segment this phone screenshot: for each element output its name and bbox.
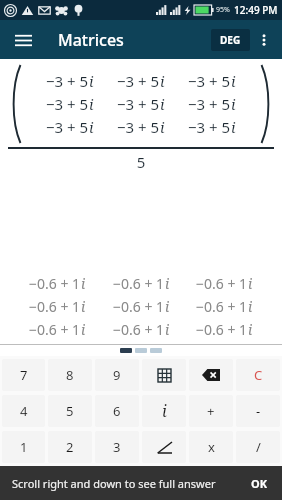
staticText: 12:49 PM [234, 3, 278, 17]
staticText: −3 + 5 [117, 71, 160, 91]
staticText: −3 + 5 [117, 117, 160, 137]
button[interactable]: + [189, 395, 233, 427]
staticText: i [162, 400, 167, 422]
button[interactable]: 4 [2, 395, 45, 427]
staticText: DEG [220, 33, 241, 47]
staticText: - [256, 402, 261, 420]
button[interactable]: Backspace [189, 359, 233, 391]
staticText: OK [251, 476, 268, 491]
button[interactable]: 1 [2, 431, 45, 463]
staticText: −0.6 + 1 [196, 297, 248, 316]
staticText: i [81, 320, 86, 339]
staticText: 6 [113, 402, 121, 420]
staticText: 4 [20, 402, 28, 420]
staticText: −3 + 5 [188, 117, 231, 137]
staticText: i [89, 94, 94, 114]
staticText: i [81, 274, 86, 293]
button[interactable]: OK [237, 468, 282, 499]
button[interactable]: 7 [2, 359, 45, 391]
button[interactable]: Imaginary unit [142, 395, 186, 427]
staticText: −0.6 + 1 [113, 274, 165, 293]
staticText: 9 [113, 366, 121, 384]
staticText: + [207, 402, 215, 420]
staticText: i [248, 297, 253, 316]
staticText: i [160, 117, 165, 137]
button[interactable]: 2 [48, 431, 92, 463]
staticText: −0.6 + 1 [29, 297, 81, 316]
button[interactable]: Angle [142, 431, 186, 463]
button[interactable]: 5 [48, 395, 92, 427]
button[interactable]: - [236, 395, 280, 427]
staticText: i [165, 274, 170, 293]
button[interactable]: 8 [48, 359, 92, 391]
staticText: x [208, 438, 215, 456]
button[interactable]: C [236, 359, 280, 391]
staticText: −3 + 5 [46, 71, 89, 91]
staticText: i [89, 71, 94, 91]
staticText: 5 [66, 402, 74, 420]
staticText: −0.6 + 1 [29, 320, 81, 339]
staticText: i [231, 94, 236, 114]
button[interactable]: 9 [95, 359, 139, 391]
staticText: i [231, 71, 236, 91]
button[interactable]: x [189, 431, 233, 463]
staticText: i [231, 117, 236, 137]
button[interactable]: More options [250, 26, 278, 54]
staticText: −3 + 5 [46, 117, 89, 137]
button[interactable]: Matrix size [142, 359, 186, 391]
staticText: −3 + 5 [188, 94, 231, 114]
button[interactable]: Menu [8, 25, 38, 55]
staticText: 2 [66, 438, 74, 456]
staticText: C [254, 366, 263, 384]
staticText: i [248, 274, 253, 293]
staticText: i [165, 297, 170, 316]
staticText: 7 [20, 366, 28, 384]
staticText: i [81, 297, 86, 316]
staticText: 8 [66, 366, 74, 384]
staticText: −0.6 + 1 [196, 320, 248, 339]
staticText: −3 + 5 [46, 94, 89, 114]
staticText: 5 [0, 152, 282, 172]
button[interactable]: 6 [95, 395, 139, 427]
staticText: −3 + 5 [188, 71, 231, 91]
staticText: i [160, 94, 165, 114]
button[interactable]: DEG [211, 29, 250, 51]
staticText: / [256, 438, 261, 456]
staticText: −0.6 + 1 [196, 274, 248, 293]
staticText: 3 [113, 438, 121, 456]
staticText: −3 + 5 [117, 94, 160, 114]
staticText: 1 [20, 438, 28, 456]
staticText: Matrices [58, 29, 124, 51]
staticText: −0.6 + 1 [113, 320, 165, 339]
button[interactable]: / [236, 431, 280, 463]
staticText: i [165, 320, 170, 339]
staticText: −0.6 + 1 [29, 274, 81, 293]
staticText: Scroll right and down to see full answer [12, 476, 216, 491]
staticText: 95% [216, 5, 230, 15]
staticText: i [89, 117, 94, 137]
button[interactable]: 3 [95, 431, 139, 463]
staticText: −0.6 + 1 [113, 297, 165, 316]
staticText: i [160, 71, 165, 91]
staticText: i [248, 320, 253, 339]
